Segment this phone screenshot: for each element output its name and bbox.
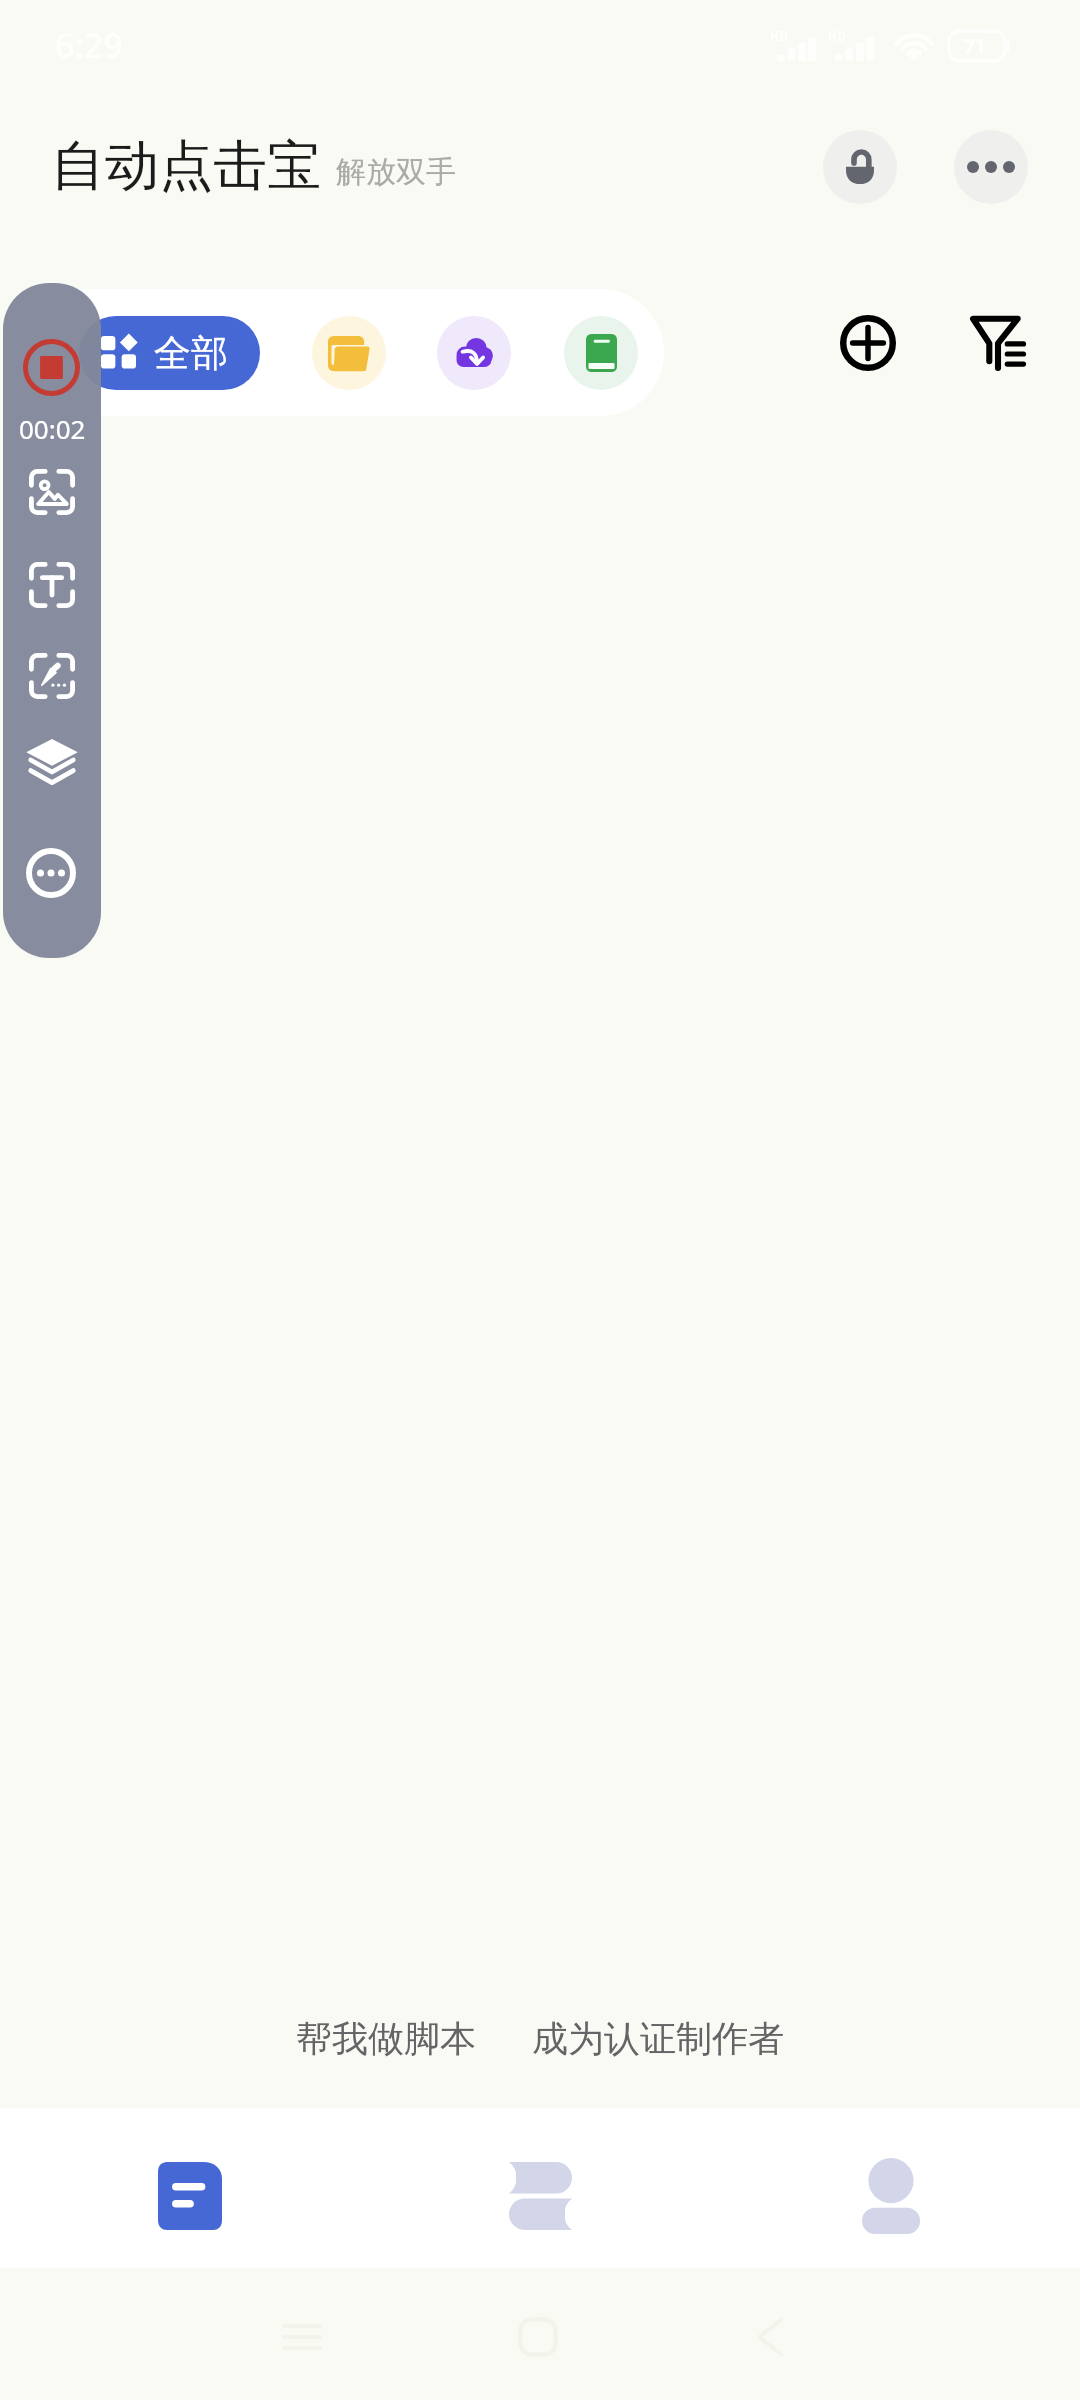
button[interactable]: Scan and edit — [22, 646, 82, 706]
button[interactable]: Filter — [953, 295, 1043, 385]
button[interactable]: Add — [823, 298, 913, 388]
button[interactable]: Market — [370, 2108, 710, 2268]
button[interactable]: Layers — [22, 731, 82, 791]
staticText: 71 — [964, 33, 986, 59]
button[interactable]: Scan text — [22, 555, 82, 615]
button[interactable]: More options — [954, 130, 1028, 204]
staticText: 6:29 — [55, 22, 123, 68]
button[interactable]: 成为认证制作者 — [522, 2006, 794, 2071]
staticText: 自动点击宝 — [51, 132, 321, 200]
staticText: 00:02 — [19, 411, 86, 446]
button[interactable]: 全部 — [79, 316, 260, 390]
button[interactable]: Book — [564, 316, 638, 390]
button[interactable]: 帮我做脚本 — [286, 2006, 486, 2071]
staticText: 全部 — [154, 330, 228, 377]
button[interactable]: Stop recording — [22, 338, 80, 396]
button[interactable]: Cloud — [437, 316, 511, 390]
button[interactable]: Scan image — [22, 462, 82, 522]
staticText: 成为认证制作者 — [532, 2016, 784, 2061]
staticText: 解放双手 — [336, 153, 456, 191]
button[interactable]: Folder — [312, 316, 386, 390]
button[interactable]: More tools — [25, 847, 77, 899]
button[interactable]: Scripts — [20, 2108, 360, 2268]
button[interactable]: Profile — [721, 2108, 1061, 2268]
button[interactable]: Unlock — [823, 130, 897, 204]
staticText: 帮我做脚本 — [296, 2016, 476, 2061]
